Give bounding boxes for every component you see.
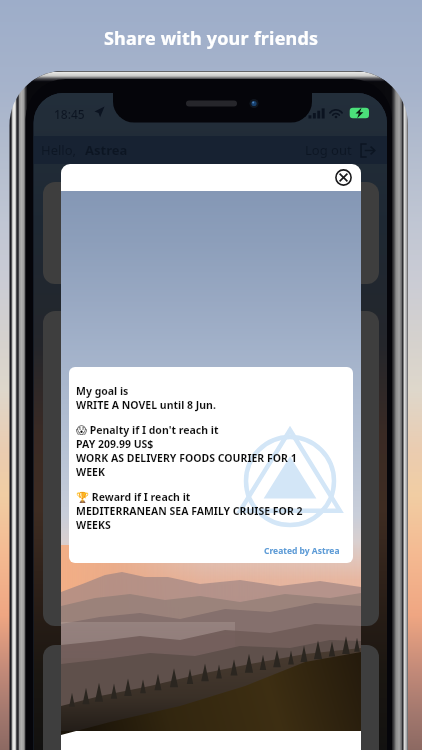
staticText: WRITE A NOVEL until 8 Jun. [76,398,216,412]
staticText: 😱 Penalty if I don't reach it [76,423,219,437]
staticText: Share with your friends [104,26,319,51]
button[interactable]: Close [333,167,354,188]
staticText: My goal is [76,384,129,398]
staticText: 🏆 Reward if I reach it [76,490,191,504]
staticText: Astrea [85,141,128,159]
staticText: WEEKS [76,518,111,532]
staticText: Log out [305,141,352,159]
staticText: Hello, [41,141,77,159]
staticText: 18:45 [54,106,85,122]
staticText: Created by Astrea [264,545,340,557]
button[interactable]: Log out [305,141,387,159]
staticText: MEDITERRANEAN SEA FAMILY CRUISE FOR 2 [76,504,303,518]
button[interactable]: Hello, [33,141,128,159]
staticText: WEEK [76,465,105,479]
staticText: WORK AS DELIVERY FOODS COURIER FOR 1 [76,451,297,465]
staticText: PAY 209.99 US$ [76,437,154,451]
